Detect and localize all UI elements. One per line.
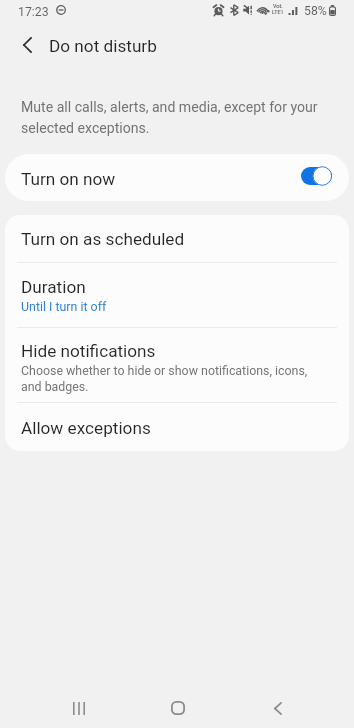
staticText: 17:23 [18,5,49,19]
staticText: VoŁ [273,3,283,9]
button[interactable] [5,215,349,262]
button[interactable]: Home [154,684,202,728]
button[interactable]: Navigate up [5,23,49,67]
button[interactable] [5,262,349,327]
staticText: Until I turn it off [21,299,107,314]
staticText: 58% [304,4,327,18]
staticText: Turn on as scheduled [21,229,185,249]
button[interactable]: Back [254,684,302,728]
staticText: Mute all calls, alerts, and media, excep… [21,99,323,136]
staticText: LTE1 [272,9,284,15]
staticText: Choose whether to hide or show notificat… [21,363,321,394]
staticText: Duration [21,277,86,297]
button[interactable] [5,402,349,451]
button[interactable]: Turn on now [5,154,349,201]
staticText: Hide notifications [21,341,156,361]
staticText: Turn on now [21,169,116,189]
staticText: Do not disturb [49,36,157,56]
staticText: Allow exceptions [21,418,151,438]
button[interactable]: Recent apps [55,684,103,728]
button[interactable] [5,327,349,402]
